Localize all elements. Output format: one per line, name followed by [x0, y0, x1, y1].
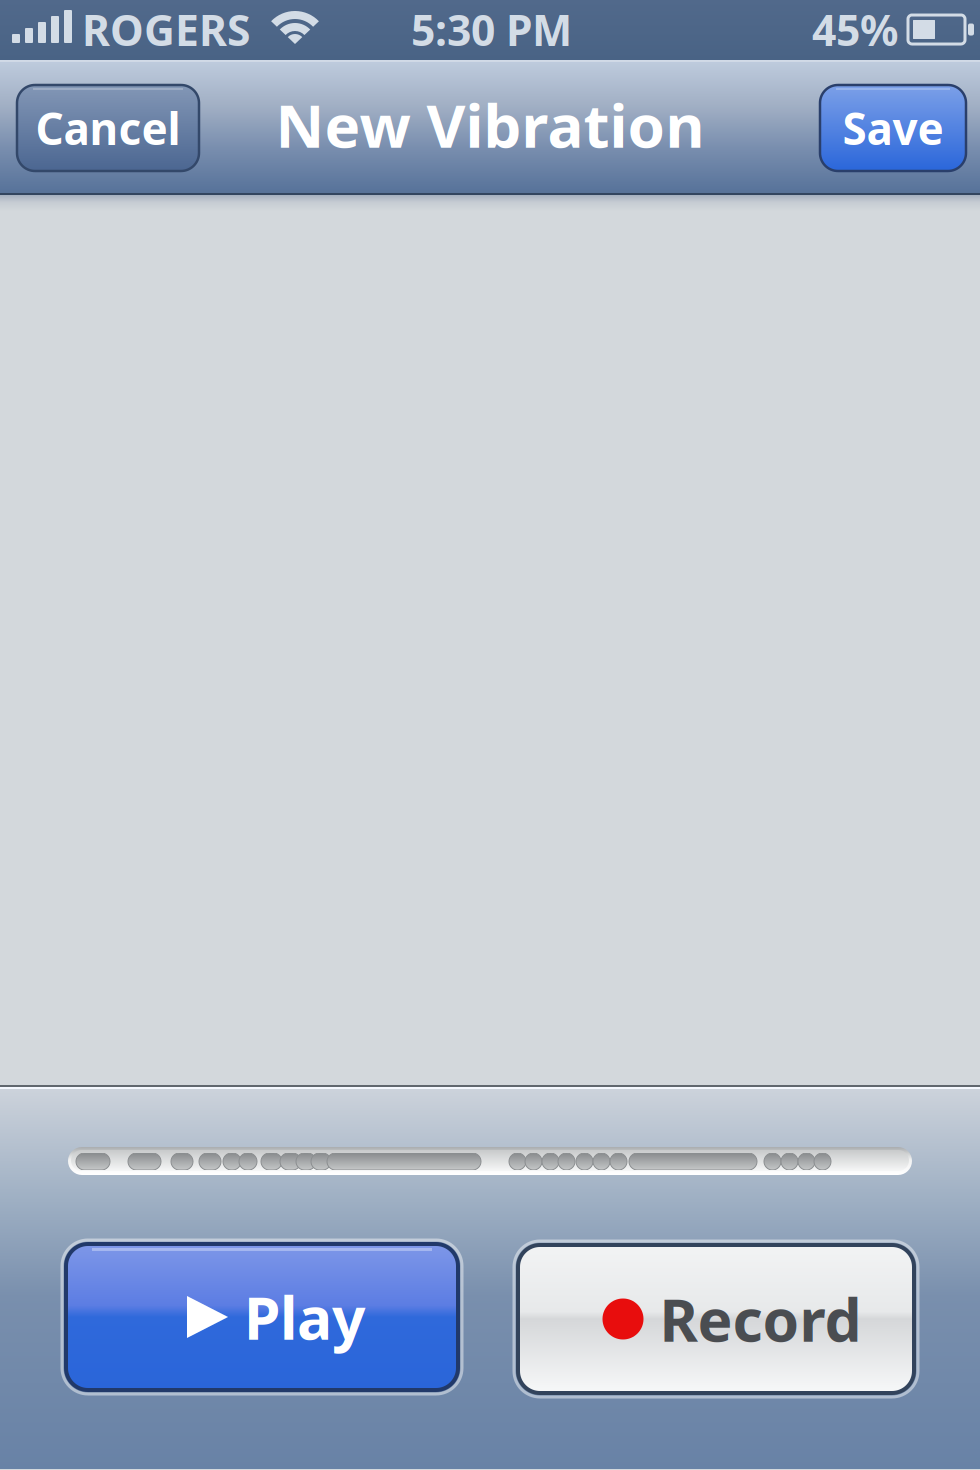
staticText: 45%	[812, 1, 898, 58]
staticText: 5:30 PM	[411, 1, 572, 58]
button[interactable]: Save	[820, 85, 966, 171]
button[interactable]: Record	[514, 1241, 918, 1397]
staticText: ROGERS	[82, 1, 251, 58]
staticText: Record	[659, 1280, 861, 1358]
staticText: Save	[842, 99, 943, 157]
button[interactable]: Cancel	[17, 85, 199, 171]
staticText: Play	[244, 1278, 365, 1356]
staticText: Cancel	[35, 99, 180, 157]
staticText: New Vibration	[275, 85, 704, 164]
button[interactable]: Play	[62, 1240, 462, 1394]
